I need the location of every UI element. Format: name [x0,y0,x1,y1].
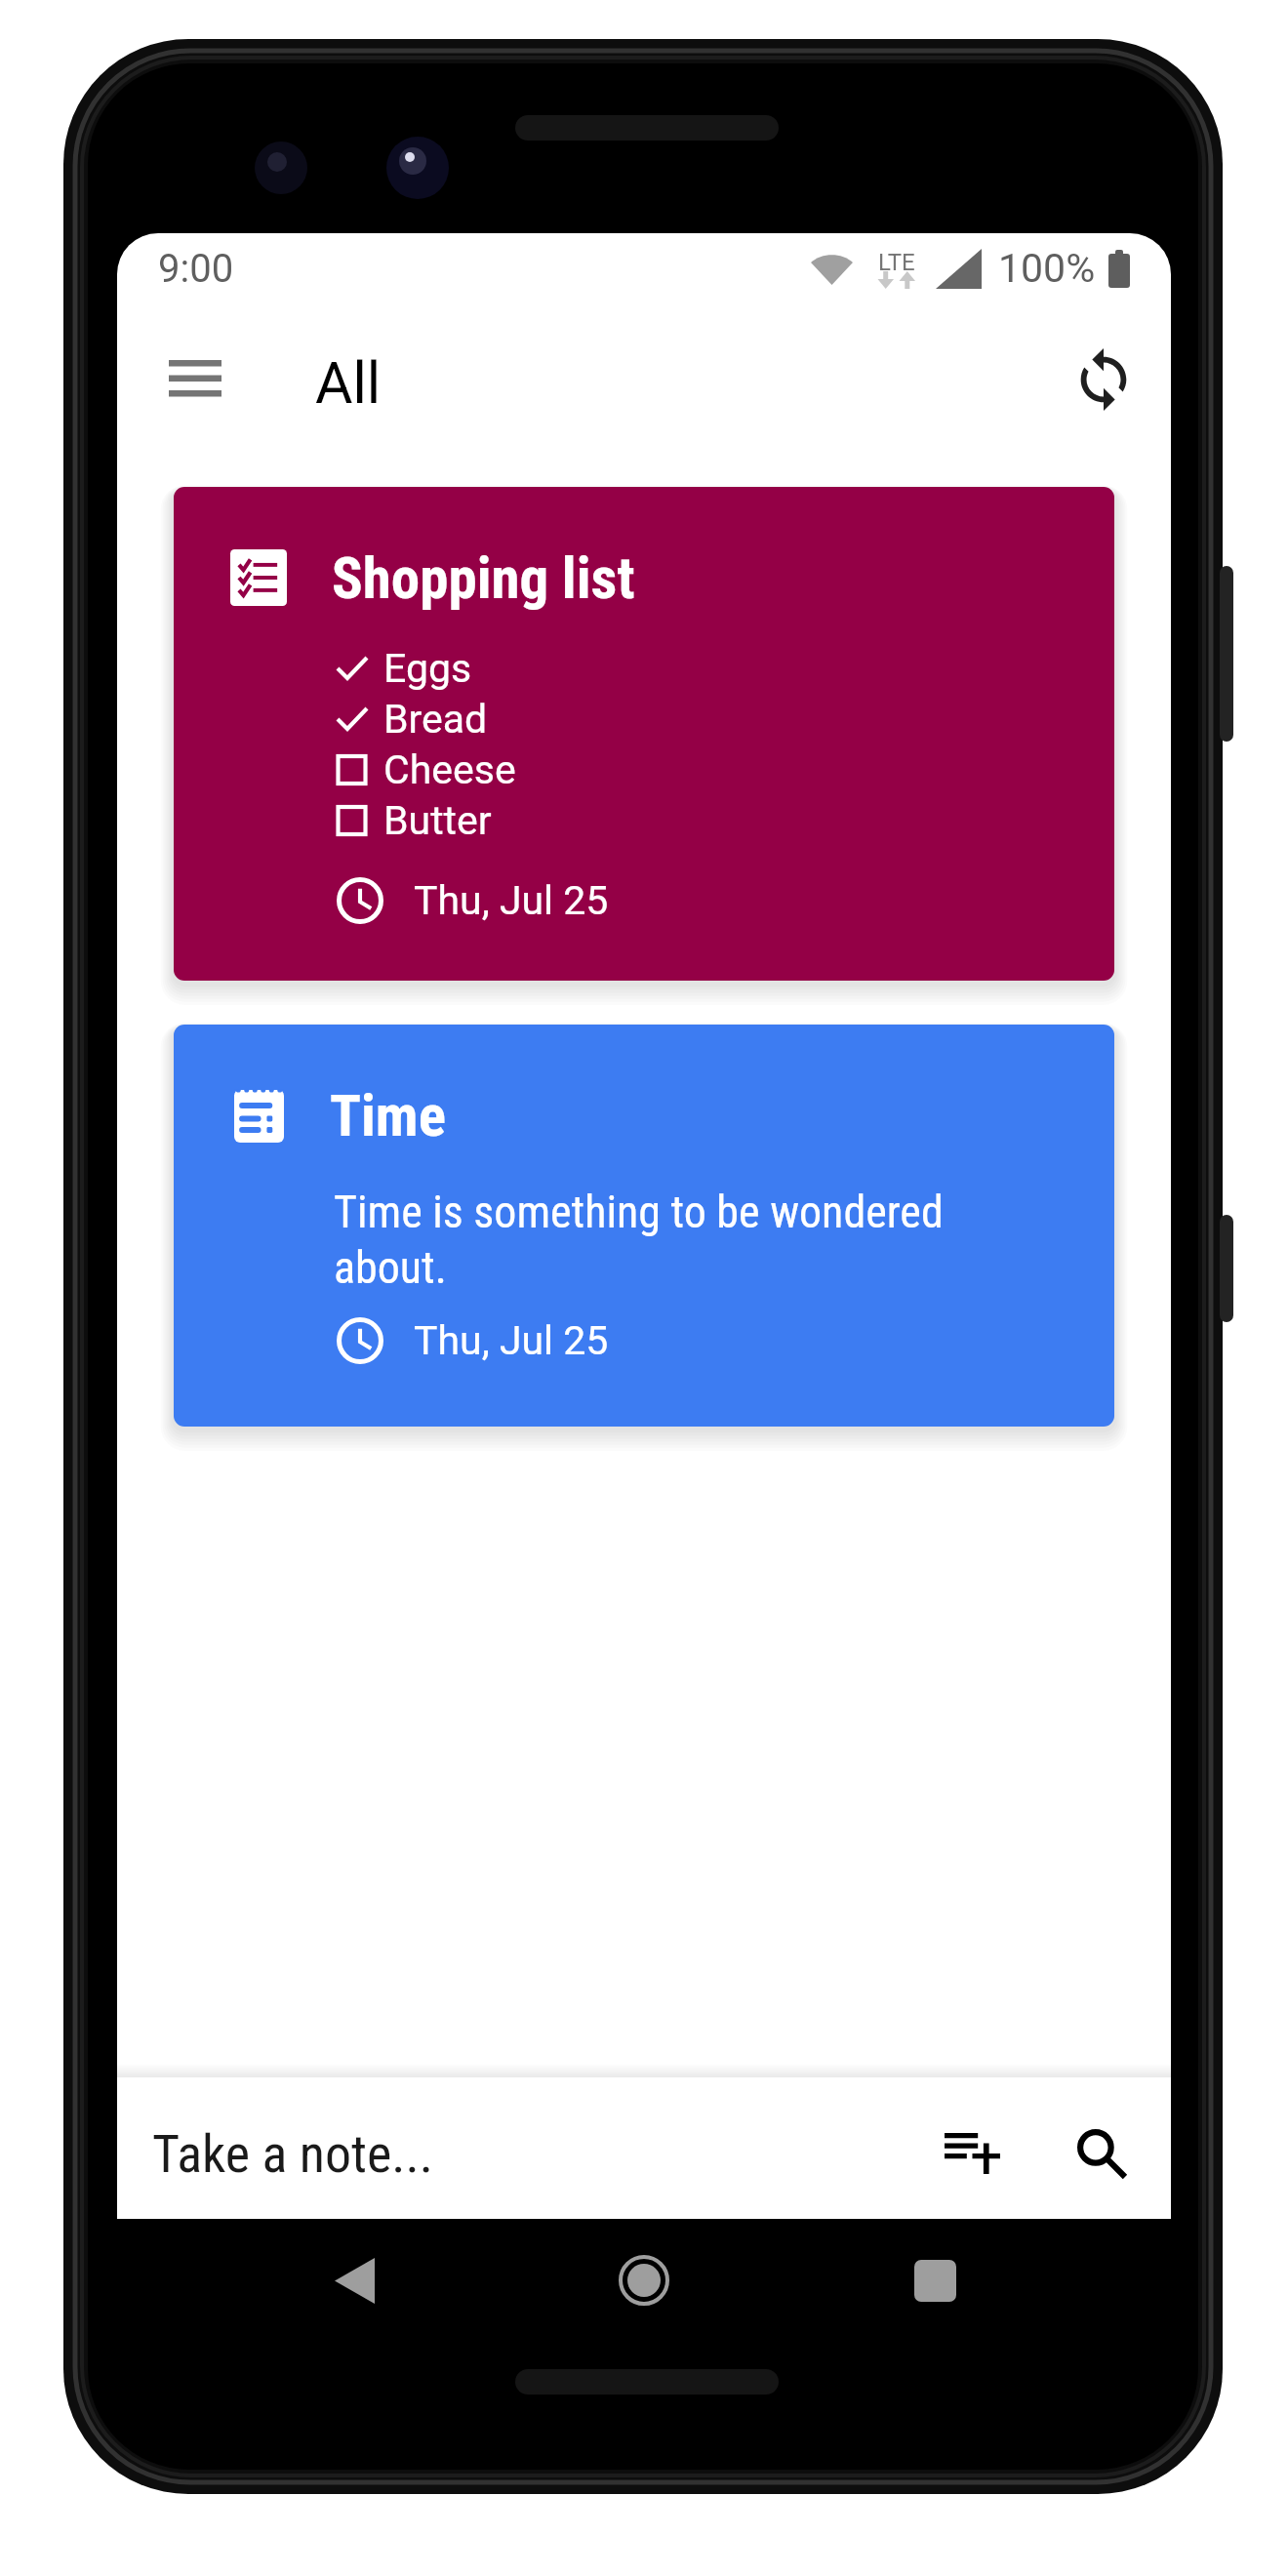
button[interactable]: Shopping list [174,487,1114,981]
staticText: Shopping list [332,544,635,612]
staticText: Eggs [383,645,472,692]
staticText: Cheese [383,746,516,793]
staticText: Butter [383,797,492,844]
staticText: Thu, Jul 25 [414,877,609,924]
staticText: LTE [878,249,915,276]
staticText: 9:00 [158,246,234,292]
staticText: Time is something to be wondered about. [334,1186,978,1294]
button[interactable]: Recents [881,2227,988,2334]
button[interactable]: Time [174,1025,1114,1427]
button[interactable]: New list [923,2100,1021,2207]
staticText: All [315,349,382,417]
staticText: Thu, Jul 25 [414,1317,609,1364]
staticText: Time [330,1082,446,1149]
button[interactable]: Open navigation menu [142,325,248,430]
button[interactable]: Sync [1055,331,1152,428]
button[interactable]: Search [1053,2100,1150,2207]
staticText: Take a note... [152,2123,434,2185]
button[interactable]: Back [301,2227,408,2334]
staticText: Bread [383,696,488,743]
staticText: 100% [998,245,1096,292]
button[interactable]: Home [590,2227,698,2334]
